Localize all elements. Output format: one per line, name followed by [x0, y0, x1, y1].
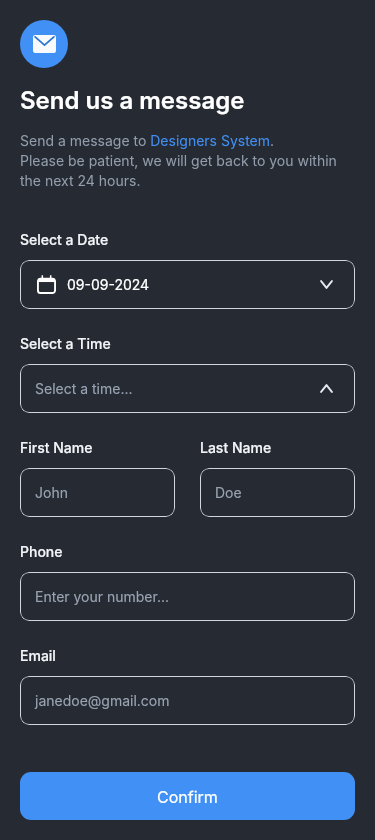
- other: Open options: [320, 280, 333, 289]
- staticText: Send us a message: [20, 86, 245, 115]
- staticText: Select a Time: [20, 335, 111, 352]
- button[interactable]: Message: [20, 20, 68, 68]
- staticText: Phone: [20, 543, 63, 560]
- button[interactable]: Select a time...: [20, 364, 355, 413]
- staticText: Last Name: [200, 439, 272, 456]
- staticText: Select a time...: [35, 380, 133, 397]
- staticText: Email: [20, 647, 56, 664]
- button[interactable]: Enter your number...: [20, 572, 355, 621]
- button[interactable]: John: [20, 468, 175, 517]
- button[interactable]: janedoe@gmail.com: [20, 676, 355, 725]
- staticText: Enter your number...: [35, 588, 170, 605]
- button[interactable]: Confirm: [20, 772, 355, 820]
- other: Close options: [320, 384, 333, 393]
- button[interactable]: 09-09-2024: [20, 260, 355, 309]
- staticText: Confirm: [157, 787, 218, 806]
- staticText: Doe: [215, 484, 242, 501]
- staticText: First Name: [20, 439, 93, 456]
- staticText: janedoe@gmail.com: [35, 692, 170, 709]
- staticText: Select a Date: [20, 231, 109, 248]
- staticText: 09-09-2024: [67, 276, 150, 293]
- staticText: Send a message to Designers System. Plea…: [20, 132, 337, 189]
- staticText: John: [35, 484, 68, 501]
- button[interactable]: Doe: [200, 468, 355, 517]
